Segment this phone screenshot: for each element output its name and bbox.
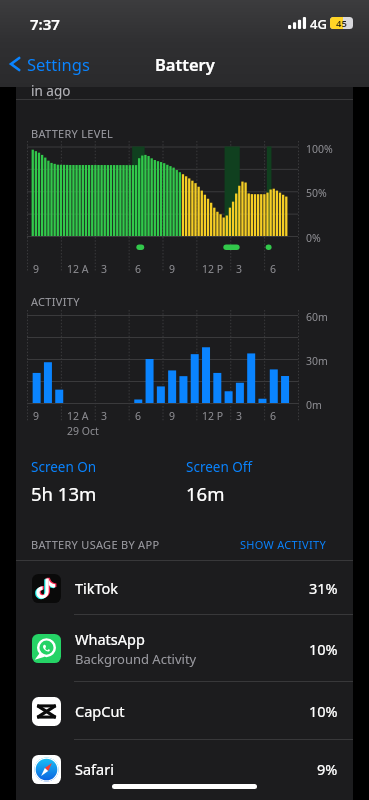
staticText: 6 [270, 409, 277, 423]
staticText: SHOW ACTIVITY [240, 537, 326, 552]
staticText: 0m [306, 398, 322, 412]
staticText: Screen Off [186, 458, 253, 476]
staticText: 6 [135, 409, 142, 423]
staticText: Background Activity [75, 650, 197, 668]
staticText: 6 [135, 262, 142, 276]
staticText: WhatsApp [75, 629, 145, 649]
staticText: Battery [155, 53, 215, 75]
staticText: 45 [336, 17, 347, 29]
staticText: 10% [309, 701, 338, 721]
staticText: 12 P [202, 409, 224, 423]
staticText: 12 A [67, 409, 89, 423]
staticText: 10% [309, 639, 338, 659]
staticText: 6 [270, 262, 277, 276]
staticText: BATTERY LEVEL [31, 126, 114, 141]
staticText: 3 [236, 409, 243, 423]
staticText: 9 [33, 409, 40, 423]
staticText: 5h 13m [31, 481, 97, 506]
staticText: TikTok [75, 578, 119, 598]
staticText: 9% [317, 759, 338, 779]
staticText: 9 [169, 262, 176, 276]
staticText: CapCut [75, 701, 125, 721]
staticText: 3 [236, 262, 243, 276]
staticText: 16m [186, 481, 225, 506]
staticText: 50% [306, 186, 327, 200]
staticText: 100% [306, 142, 333, 156]
staticText: 0% [306, 231, 321, 245]
staticText: 9 [33, 262, 40, 276]
staticText: 4G [310, 15, 327, 33]
button[interactable]: CapCut [16, 682, 353, 740]
staticText: in ago [31, 82, 71, 100]
staticText: Safari [75, 759, 114, 779]
staticText: 29 Oct [67, 424, 99, 438]
button[interactable]: Settings [8, 42, 90, 86]
staticText: 12 P [202, 262, 224, 276]
staticText: 31% [309, 578, 338, 598]
staticText: Screen On [31, 458, 97, 476]
staticText: BATTERY USAGE BY APP [31, 537, 160, 552]
staticText: 30m [306, 354, 328, 368]
staticText: 3 [101, 409, 108, 423]
staticText: 9 [169, 409, 176, 423]
staticText: 60m [306, 310, 328, 324]
button[interactable]: Show activity [240, 537, 326, 552]
staticText: Settings [27, 53, 90, 75]
button[interactable]: TikTok [16, 561, 353, 615]
staticText: ACTIVITY [31, 294, 80, 309]
staticText: 12 A [67, 262, 89, 276]
button[interactable]: Safari [16, 740, 353, 798]
staticText: 3 [101, 262, 108, 276]
button[interactable]: WhatsApp [16, 615, 353, 682]
staticText: 7:37 [30, 14, 60, 34]
